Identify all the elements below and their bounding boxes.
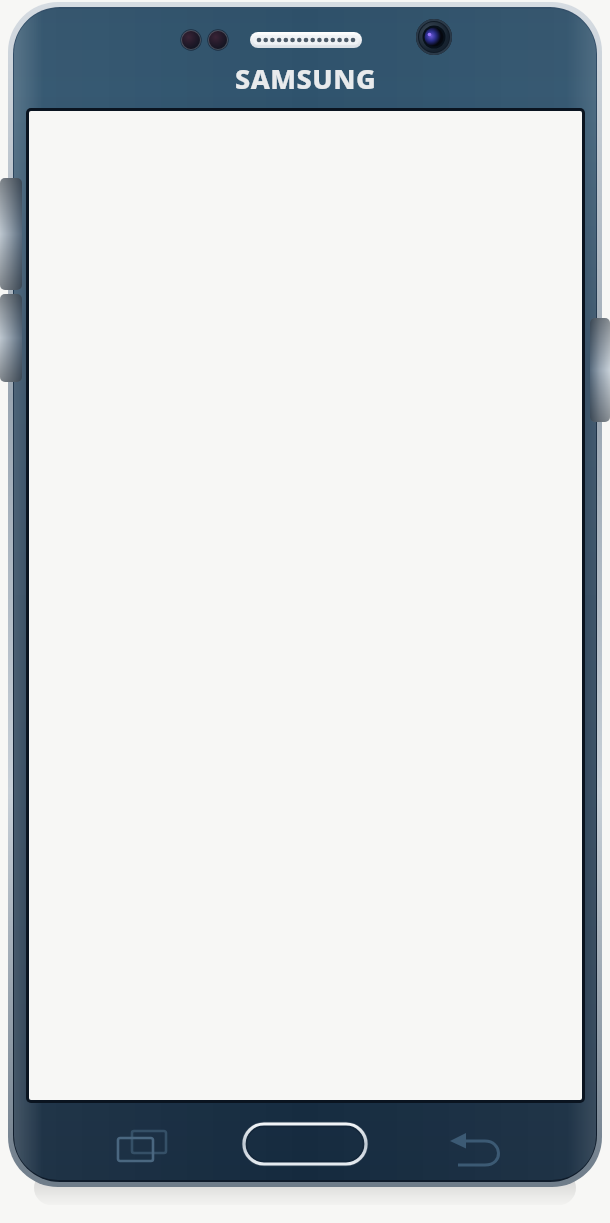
button[interactable]: Volume down [0,294,22,382]
button[interactable]: Volume up [0,178,22,290]
staticText: SAMSUNG [235,60,377,96]
button[interactable]: Recents [105,1120,175,1178]
button[interactable]: Home [242,1122,368,1166]
button[interactable]: Power [590,318,610,422]
button[interactable]: Back [445,1120,515,1178]
